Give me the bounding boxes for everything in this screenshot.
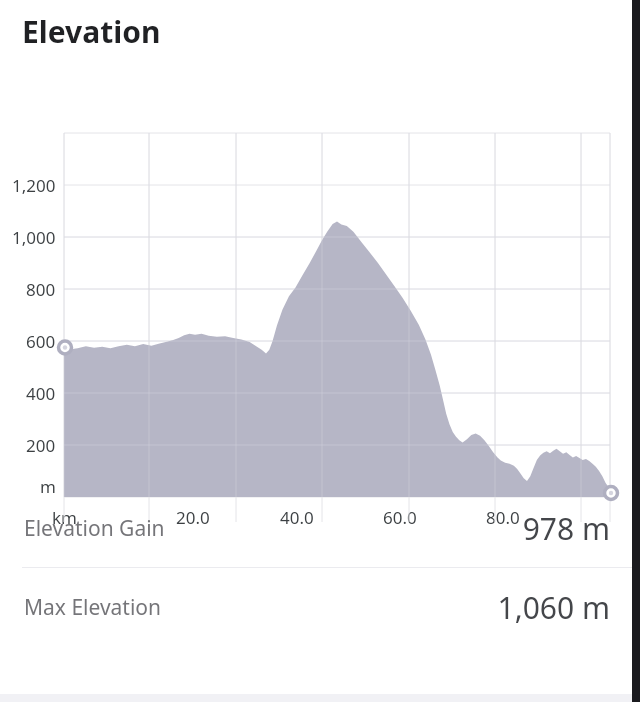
staticText: Elevation	[22, 11, 161, 52]
button[interactable]: Max Elevation	[0, 568, 640, 646]
staticText: 40.0	[280, 506, 314, 529]
staticText: 1,200	[12, 174, 56, 197]
staticText: 400	[26, 382, 56, 405]
staticText: m	[40, 475, 56, 498]
staticText: 80.0	[486, 506, 520, 529]
staticText: 978 m	[522, 508, 610, 549]
staticText: Max Elevation	[24, 593, 162, 622]
staticText: 60.0	[383, 506, 417, 529]
staticText: Elevation Gain	[24, 514, 165, 543]
staticText: 800	[26, 278, 56, 301]
other: Elevation profile chart	[0, 62, 640, 467]
staticText: 1,000	[12, 226, 56, 249]
staticText: 200	[26, 434, 56, 457]
staticText: 1,060 m	[497, 587, 610, 628]
staticText: km	[52, 506, 77, 529]
button[interactable]: Elevation Gain	[0, 489, 640, 567]
staticText: 20.0	[176, 506, 210, 529]
staticText: 600	[26, 330, 56, 353]
